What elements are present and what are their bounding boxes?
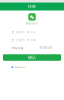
staticText: 服务协议 — [22, 66, 26, 68]
staticText: 转账金额 — [11, 46, 23, 50]
staticText: 微信支付 — [26, 22, 38, 25]
staticText: 李小四 — [27, 38, 36, 42]
staticText: 张小三 — [27, 30, 36, 34]
button[interactable]: 确认 — [3, 54, 61, 61]
staticText: 确认 — [28, 55, 36, 60]
staticText: 转账 — [28, 4, 36, 9]
staticText: ¥100.00 — [39, 46, 52, 50]
staticText: 收款方 — [16, 30, 25, 34]
button[interactable]: 付款方 — [8, 36, 55, 44]
button[interactable]: 服务协议 — [22, 66, 26, 68]
button[interactable]: 收款方 — [8, 28, 55, 36]
staticText: 我已阅读并同意 — [14, 66, 21, 68]
button[interactable]: Agree to terms — [11, 66, 13, 68]
staticText: 付款方 — [16, 38, 25, 42]
